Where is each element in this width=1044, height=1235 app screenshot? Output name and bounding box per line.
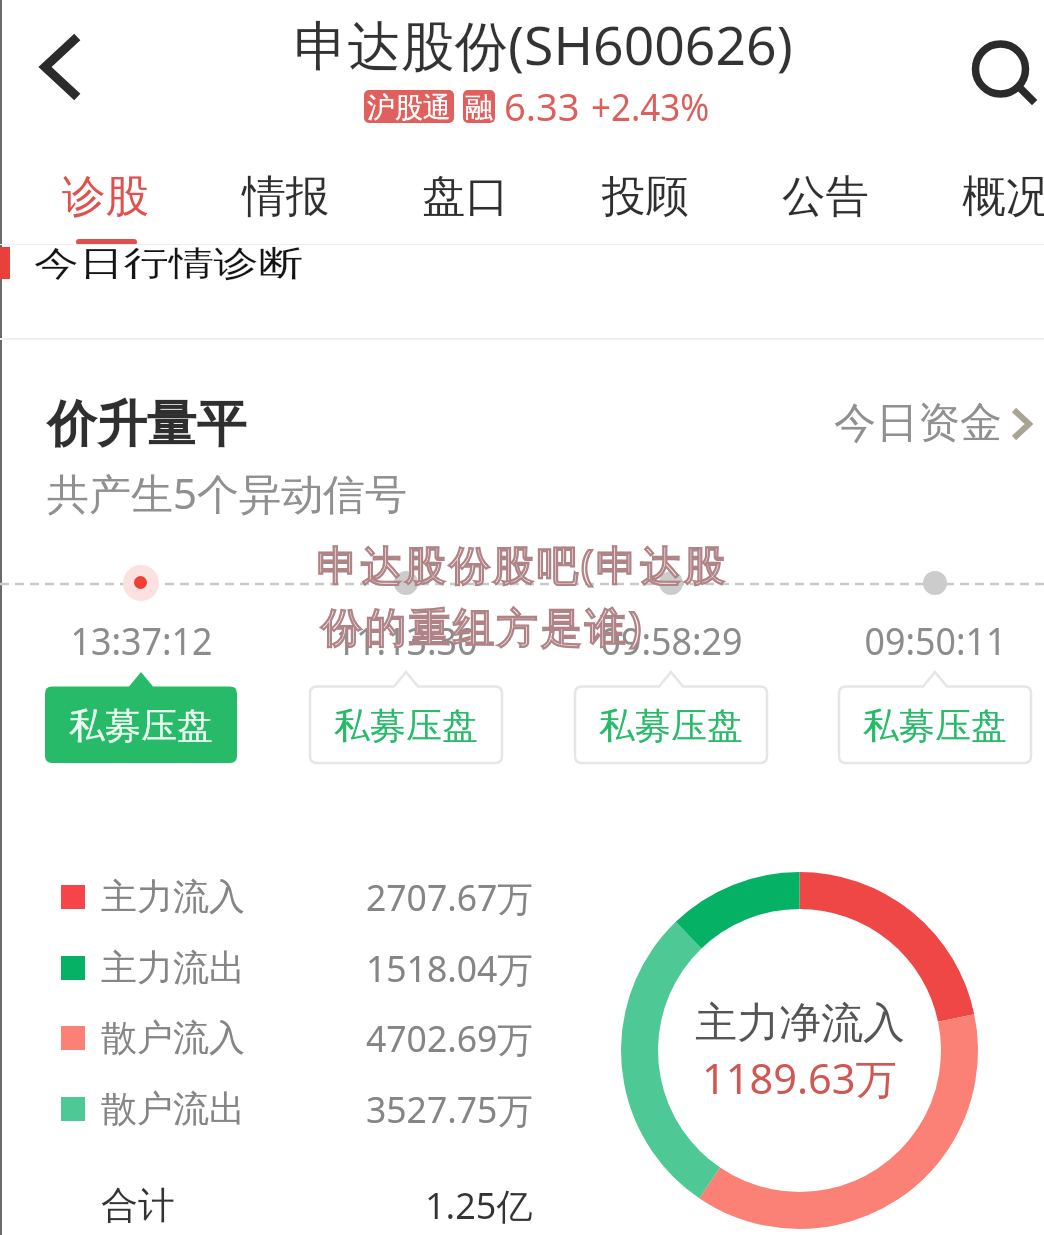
staticText: 私募压盘 xyxy=(599,703,743,748)
button[interactable]: 今日资金 xyxy=(834,397,1032,450)
staticText: 盘口 xyxy=(422,169,509,224)
staticText: 09:58:29 xyxy=(600,614,742,666)
button[interactable]: 主力流出 xyxy=(61,940,533,995)
button[interactable]: 概况 xyxy=(941,159,1044,245)
staticText: 申达股份股吧(申达股 xyxy=(317,536,729,592)
staticText: 4702.69万 xyxy=(366,1014,533,1062)
staticText: 公告 xyxy=(782,169,869,224)
staticText: 私募压盘 xyxy=(863,703,1007,748)
button[interactable]: 投顾 xyxy=(581,159,709,245)
button[interactable]: 诊股 xyxy=(41,159,169,245)
staticText: 2707.67万 xyxy=(366,873,533,921)
button[interactable]: 公告 xyxy=(761,159,889,245)
button[interactable]: 盘口 xyxy=(401,159,529,245)
button[interactable]: 私募压盘 xyxy=(839,672,1031,763)
staticText: 合计 xyxy=(101,1182,175,1229)
staticText: 私募压盘 xyxy=(69,703,213,748)
staticText: 主力净流入 xyxy=(695,997,905,1050)
staticText: 概况 xyxy=(962,169,1044,224)
staticText: 今日行情诊断 xyxy=(34,242,303,285)
staticText: 主力流入 xyxy=(101,874,245,919)
button[interactable]: 主力流入 xyxy=(61,869,533,924)
staticText: 1518.04万 xyxy=(366,944,533,992)
staticText: 11:13:30 xyxy=(335,614,477,666)
staticText: 1189.63万 xyxy=(702,1050,898,1107)
staticText: 融 xyxy=(465,90,493,123)
staticText: 价升量平 xyxy=(47,393,247,456)
staticText: 份的重组方是谁) xyxy=(321,598,645,654)
staticText: 3527.75万 xyxy=(366,1085,533,1133)
staticText: 份的重组方是谁) xyxy=(321,598,645,654)
button[interactable]: Search xyxy=(958,30,1044,130)
staticText: 共产生5个异动信号 xyxy=(47,464,408,521)
staticText: 主力流出 xyxy=(101,945,245,990)
staticText: 私募压盘 xyxy=(334,703,478,748)
staticText: 申达股份股吧(申达股 xyxy=(317,536,729,592)
staticText: 投顾 xyxy=(602,169,689,224)
button[interactable]: Back xyxy=(9,17,109,117)
staticText: 13:37:12 xyxy=(70,614,212,666)
staticText: 沪股通 xyxy=(367,90,451,123)
button[interactable]: 私募压盘 xyxy=(310,672,502,763)
staticText: 6.33 xyxy=(504,80,580,132)
staticText: 诊股 xyxy=(62,169,149,224)
button[interactable]: 私募压盘 xyxy=(575,672,767,763)
staticText: 情报 xyxy=(242,169,329,224)
staticText: 今日资金 xyxy=(834,397,1002,450)
button[interactable]: 散户流入 xyxy=(61,1010,533,1065)
staticText: 1.25亿 xyxy=(425,1181,533,1230)
staticText: +2.43% xyxy=(591,80,710,132)
staticText: 散户流入 xyxy=(101,1015,245,1060)
button[interactable]: 私募压盘 xyxy=(45,672,237,763)
staticText: 散户流出 xyxy=(101,1086,245,1131)
button[interactable]: 散户流出 xyxy=(61,1081,533,1136)
staticText: 09:50:11 xyxy=(864,614,1006,666)
button[interactable]: 情报 xyxy=(221,159,349,245)
staticText: 申达股份(SH600626) xyxy=(294,8,793,81)
